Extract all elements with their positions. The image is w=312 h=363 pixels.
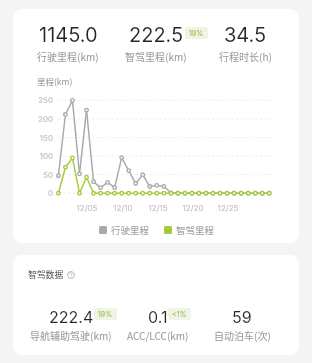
staticText: 250 (13, 95, 53, 105)
staticText: 智驾里程(km) (125, 49, 187, 63)
staticText: 100 (13, 151, 53, 161)
staticText: 行驶里程 (111, 223, 150, 237)
staticText: 1145.0 (39, 23, 98, 47)
button[interactable]: 0.1 (98, 307, 218, 342)
staticText: 19% (98, 310, 113, 318)
staticText: 19% (189, 29, 204, 37)
staticText: 12/25 (212, 203, 244, 213)
staticText: 导航辅助驾驶(km) (30, 328, 112, 342)
staticText: 智驾数据 (28, 268, 64, 281)
staticText: 行驶里程(km) (37, 49, 99, 63)
staticText: 12/10 (107, 203, 139, 213)
other: About assisted driving data (67, 271, 75, 279)
staticText: 12/15 (142, 203, 174, 213)
button[interactable]: 1145.0 (13, 23, 128, 63)
staticText: <1% (172, 310, 187, 318)
staticText: 行程时长(h) (219, 49, 272, 63)
staticText: ACC/LCC(km) (127, 328, 189, 342)
staticText: 34.5 (224, 23, 267, 47)
staticText: 0 (13, 188, 53, 198)
staticText: 0.1 (148, 307, 168, 326)
button[interactable]: 行驶里程 (99, 223, 150, 237)
staticText: 200 (13, 114, 53, 124)
staticText: 自动泊车(次) (214, 328, 271, 342)
button[interactable]: 34.5 (185, 23, 299, 63)
staticText: 12/20 (177, 203, 209, 213)
staticText: 50 (13, 170, 53, 180)
staticText: 里程(km) (37, 75, 73, 87)
staticText: 12/05 (71, 203, 103, 213)
button[interactable]: 智驾里程 (164, 223, 215, 237)
staticText: 59 (232, 307, 252, 326)
staticText: 智驾里程 (176, 223, 215, 237)
staticText: 150 (13, 133, 53, 143)
button[interactable]: 222.5 (96, 23, 216, 63)
button[interactable]: 智驾数据 (28, 268, 75, 281)
staticText: 222.5 (129, 23, 184, 47)
staticText: 222.4 (49, 307, 94, 326)
button[interactable]: 222.4 (13, 307, 131, 342)
button[interactable]: 59 (182, 307, 299, 342)
